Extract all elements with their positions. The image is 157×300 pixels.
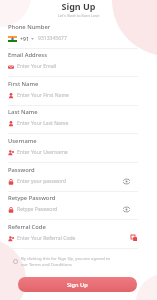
button[interactable]: Sign Up <box>18 277 137 292</box>
staticText: Phone Number <box>8 23 51 31</box>
button[interactable]: Username <box>0 137 157 157</box>
staticText: Enter Your Username <box>17 149 68 156</box>
button[interactable]: Referral info <box>129 233 139 243</box>
staticText: By clicking this for Sign Up, you are ag… <box>21 256 111 267</box>
staticText: Enter Your Referral Code <box>17 235 76 242</box>
staticText: Enter Your First Name <box>17 92 69 99</box>
staticText: Sign Up <box>0 0 157 12</box>
staticText: 9313345677 <box>38 35 67 42</box>
staticText: Email Address <box>8 51 47 59</box>
button[interactable]: Email Address <box>0 51 157 71</box>
staticText: Enter your password <box>17 178 67 185</box>
button[interactable]: Retype Password <box>0 194 157 214</box>
staticText: Retype Password <box>8 194 56 202</box>
staticText: Enter Your Email <box>17 63 57 70</box>
button[interactable]: By clicking this for Sign Up, you are ag… <box>13 256 145 267</box>
button[interactable]: First Name <box>0 80 157 100</box>
staticText: Retype Password <box>17 206 58 213</box>
button[interactable]: Show password <box>121 204 131 214</box>
button[interactable]: Referral Code <box>0 223 157 243</box>
button[interactable]: Last Name <box>0 108 157 128</box>
staticText: Username <box>8 137 37 145</box>
staticText: First Name <box>8 80 39 88</box>
button[interactable]: Password <box>0 166 157 186</box>
staticText: Sign Up <box>67 281 88 289</box>
button[interactable]: Phone Number <box>0 23 157 42</box>
staticText: Enter Your Last Name <box>17 120 69 127</box>
staticText: Referral Code <box>8 223 46 231</box>
staticText: +91 <box>20 35 29 42</box>
staticText: Last Name <box>8 108 38 116</box>
button[interactable]: Show password <box>121 176 131 186</box>
staticText: Let's Start to Earn Love <box>0 13 157 18</box>
staticText: Password <box>8 166 35 174</box>
